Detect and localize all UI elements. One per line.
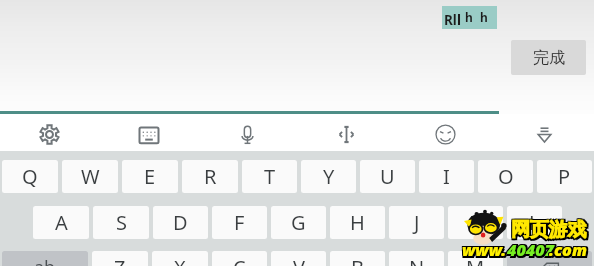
staticText: 网页游戏 bbox=[511, 220, 587, 244]
staticText: .com bbox=[551, 239, 589, 261]
button[interactable]: I bbox=[419, 160, 474, 193]
button[interactable]: S bbox=[93, 206, 149, 239]
staticText: www. bbox=[462, 238, 507, 260]
staticText: R bbox=[204, 163, 217, 190]
button[interactable]: Move cursor bbox=[297, 114, 396, 151]
staticText: Rll bbox=[444, 11, 461, 29]
button[interactable]: E bbox=[122, 160, 178, 193]
staticText: www. bbox=[464, 238, 509, 260]
staticText: E bbox=[144, 163, 156, 190]
staticText: .com bbox=[549, 239, 587, 261]
button[interactable]: N bbox=[389, 251, 444, 266]
button[interactable]: K bbox=[448, 206, 503, 239]
staticText: F bbox=[234, 209, 245, 236]
staticText: 网页游戏 bbox=[511, 218, 587, 242]
button[interactable]: X bbox=[152, 251, 208, 266]
staticText: 40407 bbox=[507, 239, 554, 261]
staticText: X bbox=[174, 254, 186, 266]
staticText: Z bbox=[114, 254, 126, 266]
staticText: M bbox=[466, 254, 485, 266]
staticText: www. bbox=[461, 239, 506, 261]
button[interactable]: Emoji bbox=[396, 114, 495, 151]
button[interactable]: G bbox=[271, 206, 326, 239]
staticText: 40407 bbox=[509, 241, 556, 263]
staticText: S bbox=[116, 209, 127, 236]
button[interactable]: Switch to letters bbox=[2, 251, 88, 266]
button[interactable]: 完成 bbox=[511, 40, 586, 75]
staticText: .com bbox=[548, 239, 586, 261]
staticText: .com bbox=[549, 241, 587, 263]
button[interactable]: B bbox=[330, 251, 385, 266]
staticText: H bbox=[350, 209, 365, 236]
staticText: I bbox=[443, 163, 450, 190]
button[interactable]: W bbox=[62, 160, 118, 193]
button[interactable]: A bbox=[33, 206, 89, 239]
button[interactable]: L bbox=[507, 206, 562, 239]
staticText: 40407 bbox=[509, 238, 556, 260]
staticText: ab bbox=[34, 255, 56, 266]
staticText: 网页游戏 bbox=[510, 217, 586, 241]
staticText: .com bbox=[551, 238, 589, 260]
staticText: L bbox=[529, 209, 540, 236]
staticText: 完成 bbox=[533, 48, 565, 68]
button[interactable]: Z bbox=[92, 251, 148, 266]
staticText: www. bbox=[462, 239, 507, 261]
staticText: 40407 bbox=[506, 238, 553, 260]
staticText: www. bbox=[464, 239, 509, 261]
staticText: U bbox=[380, 163, 395, 190]
staticText: 40407 bbox=[506, 239, 553, 261]
button[interactable]: J bbox=[389, 206, 444, 239]
staticText: C bbox=[233, 254, 246, 266]
button[interactable]: V bbox=[271, 251, 326, 266]
staticText: 40407 bbox=[509, 239, 556, 261]
button[interactable]: Voice input bbox=[198, 114, 297, 151]
staticText: www. bbox=[462, 241, 507, 263]
button[interactable]: D bbox=[153, 206, 208, 239]
button[interactable]: U bbox=[360, 160, 415, 193]
button[interactable]: C bbox=[212, 251, 267, 266]
staticText: Y bbox=[323, 163, 335, 190]
staticText: O bbox=[498, 163, 514, 190]
staticText: h bbox=[480, 9, 488, 25]
staticText: Q bbox=[22, 163, 38, 190]
staticText: www. bbox=[464, 241, 509, 263]
staticText: J bbox=[414, 209, 420, 236]
staticText: .com bbox=[548, 238, 586, 260]
staticText: W bbox=[81, 163, 100, 190]
staticText: K bbox=[469, 209, 482, 236]
staticText: .com bbox=[548, 241, 586, 263]
staticText: 40407 bbox=[507, 241, 554, 263]
button[interactable]: Hide keyboard bbox=[495, 114, 594, 151]
staticText: T bbox=[264, 163, 276, 190]
staticText: www. bbox=[461, 238, 506, 260]
staticText: www. bbox=[461, 241, 506, 263]
button[interactable]: F bbox=[212, 206, 267, 239]
staticText: 网页游戏 bbox=[510, 220, 586, 244]
button[interactable]: Backspace bbox=[507, 251, 592, 266]
staticText: 网页游戏 bbox=[513, 218, 589, 242]
button[interactable]: Q bbox=[2, 160, 58, 193]
button[interactable]: Change keyboard bbox=[99, 114, 198, 151]
button[interactable]: H bbox=[330, 206, 385, 239]
button[interactable]: O bbox=[478, 160, 533, 193]
button[interactable]: M bbox=[448, 251, 503, 266]
staticText: V bbox=[293, 254, 305, 266]
staticText: .com bbox=[549, 238, 587, 260]
staticText: .com bbox=[551, 241, 589, 263]
staticText: 40407 bbox=[506, 241, 553, 263]
staticText: D bbox=[173, 209, 188, 236]
button[interactable]: Y bbox=[301, 160, 356, 193]
staticText: N bbox=[409, 254, 425, 266]
button[interactable]: R bbox=[182, 160, 238, 193]
staticText: A bbox=[55, 209, 68, 236]
button[interactable]: T bbox=[242, 160, 297, 193]
staticText: B bbox=[351, 254, 364, 266]
staticText: G bbox=[291, 209, 306, 236]
staticText: 网页游戏 bbox=[513, 217, 589, 241]
staticText: P bbox=[558, 163, 571, 190]
button[interactable]: P bbox=[537, 160, 592, 193]
staticText: 网页游戏 bbox=[513, 220, 589, 244]
staticText: 网页游戏 bbox=[511, 217, 587, 241]
staticText: h bbox=[465, 9, 473, 25]
button[interactable]: Settings bbox=[0, 114, 99, 151]
